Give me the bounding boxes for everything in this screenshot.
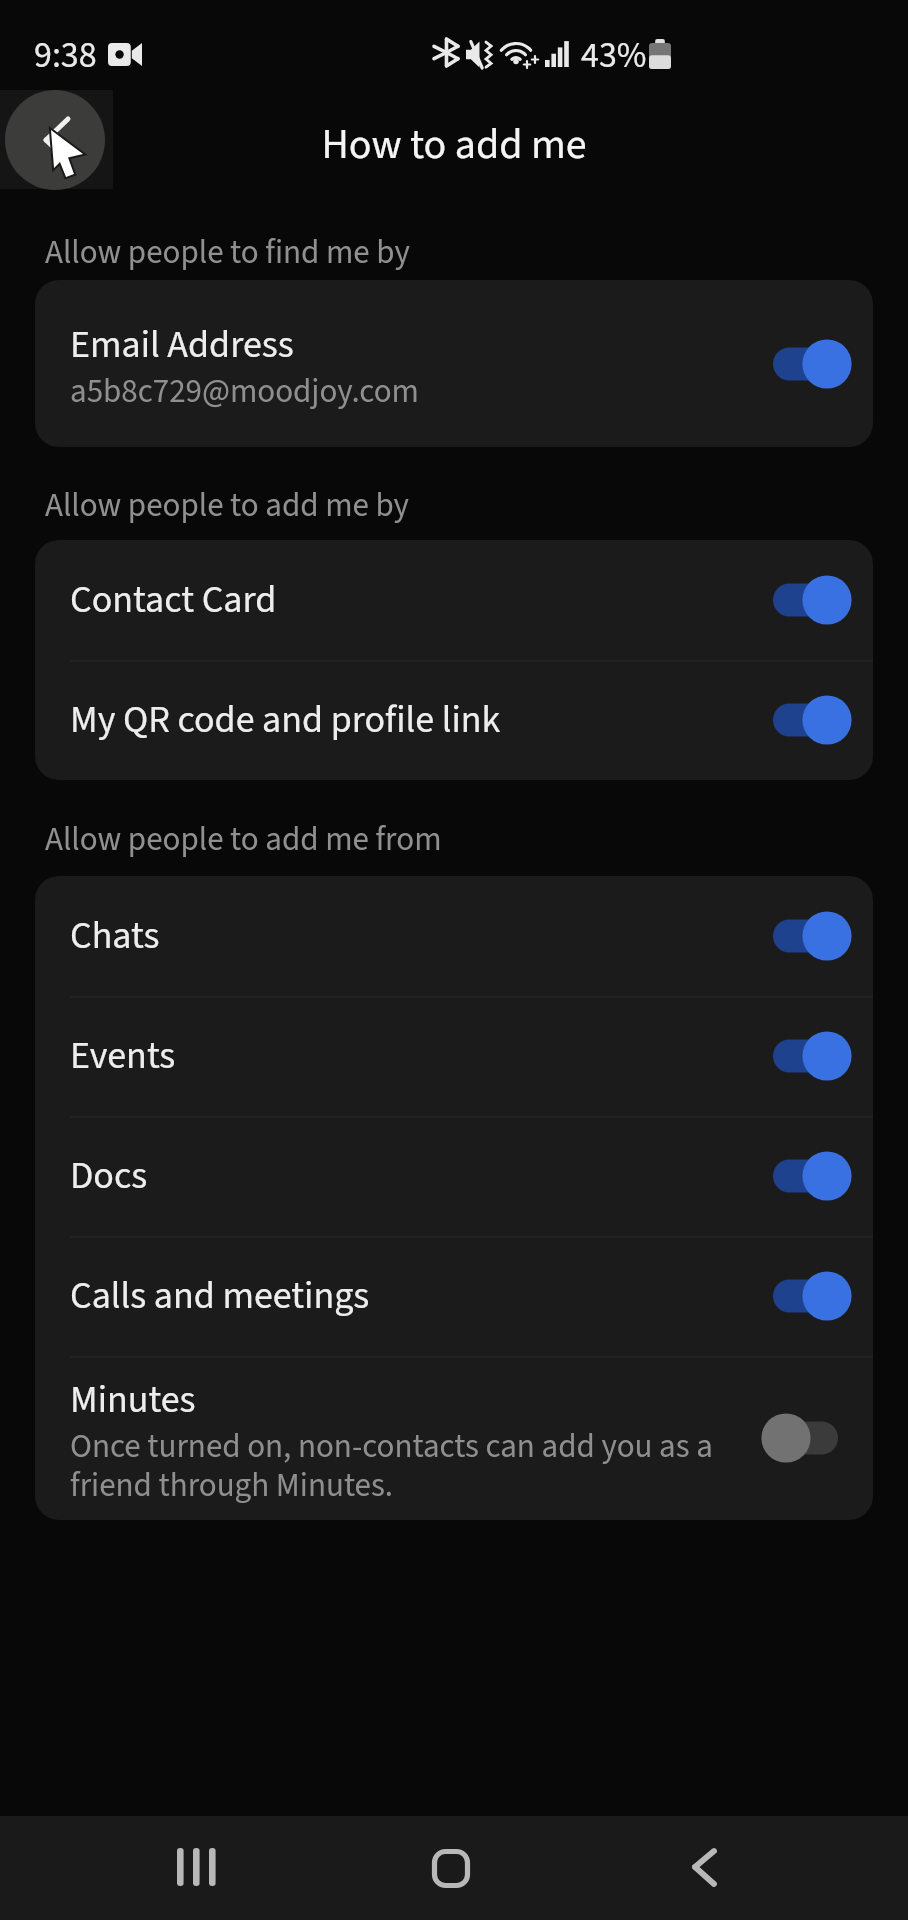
button[interactable]: Events xyxy=(35,996,873,1116)
staticText: Docs xyxy=(70,1149,148,1203)
button[interactable]: Docs xyxy=(35,1116,873,1236)
staticText: Calls and meetings xyxy=(70,1269,370,1323)
button[interactable]: On xyxy=(757,1024,867,1088)
button[interactable]: Home xyxy=(380,1816,520,1920)
button[interactable]: Email Address xyxy=(35,280,873,447)
staticText: Allow people to find me by xyxy=(45,229,410,276)
button[interactable]: My QR code and profile link xyxy=(35,660,873,780)
button[interactable]: Chats xyxy=(35,876,873,996)
staticText: Email Address xyxy=(70,318,294,372)
staticText: Minutes xyxy=(70,1373,196,1427)
staticText: Allow people to add me from xyxy=(45,816,442,863)
button[interactable]: Calls and meetings xyxy=(35,1236,873,1356)
staticText: My QR code and profile link xyxy=(70,693,501,747)
button[interactable]: Minutes xyxy=(35,1356,873,1520)
staticText: Once turned on, non-contacts can add you… xyxy=(70,1423,713,1509)
staticText: 9:38 xyxy=(34,30,97,81)
button[interactable]: Back xyxy=(0,90,113,189)
staticText: Contact Card xyxy=(70,573,277,627)
staticText: Chats xyxy=(70,909,160,963)
button[interactable]: On xyxy=(757,904,867,968)
staticText: 43% xyxy=(581,30,647,81)
button[interactable]: Off xyxy=(757,1406,867,1470)
staticText: Allow people to add me by xyxy=(45,482,410,529)
button[interactable]: Back xyxy=(635,1816,775,1920)
button[interactable]: Recent apps xyxy=(126,1816,266,1920)
button[interactable]: On xyxy=(757,332,867,396)
staticText: a5b8c729@moodjoy.com xyxy=(70,368,419,415)
staticText: Events xyxy=(70,1029,176,1083)
button[interactable]: Contact Card xyxy=(35,540,873,660)
button[interactable]: On xyxy=(757,1144,867,1208)
button[interactable]: On xyxy=(757,568,867,632)
staticText: How to add me xyxy=(321,115,587,175)
button[interactable]: On xyxy=(757,688,867,752)
button[interactable]: On xyxy=(757,1264,867,1328)
